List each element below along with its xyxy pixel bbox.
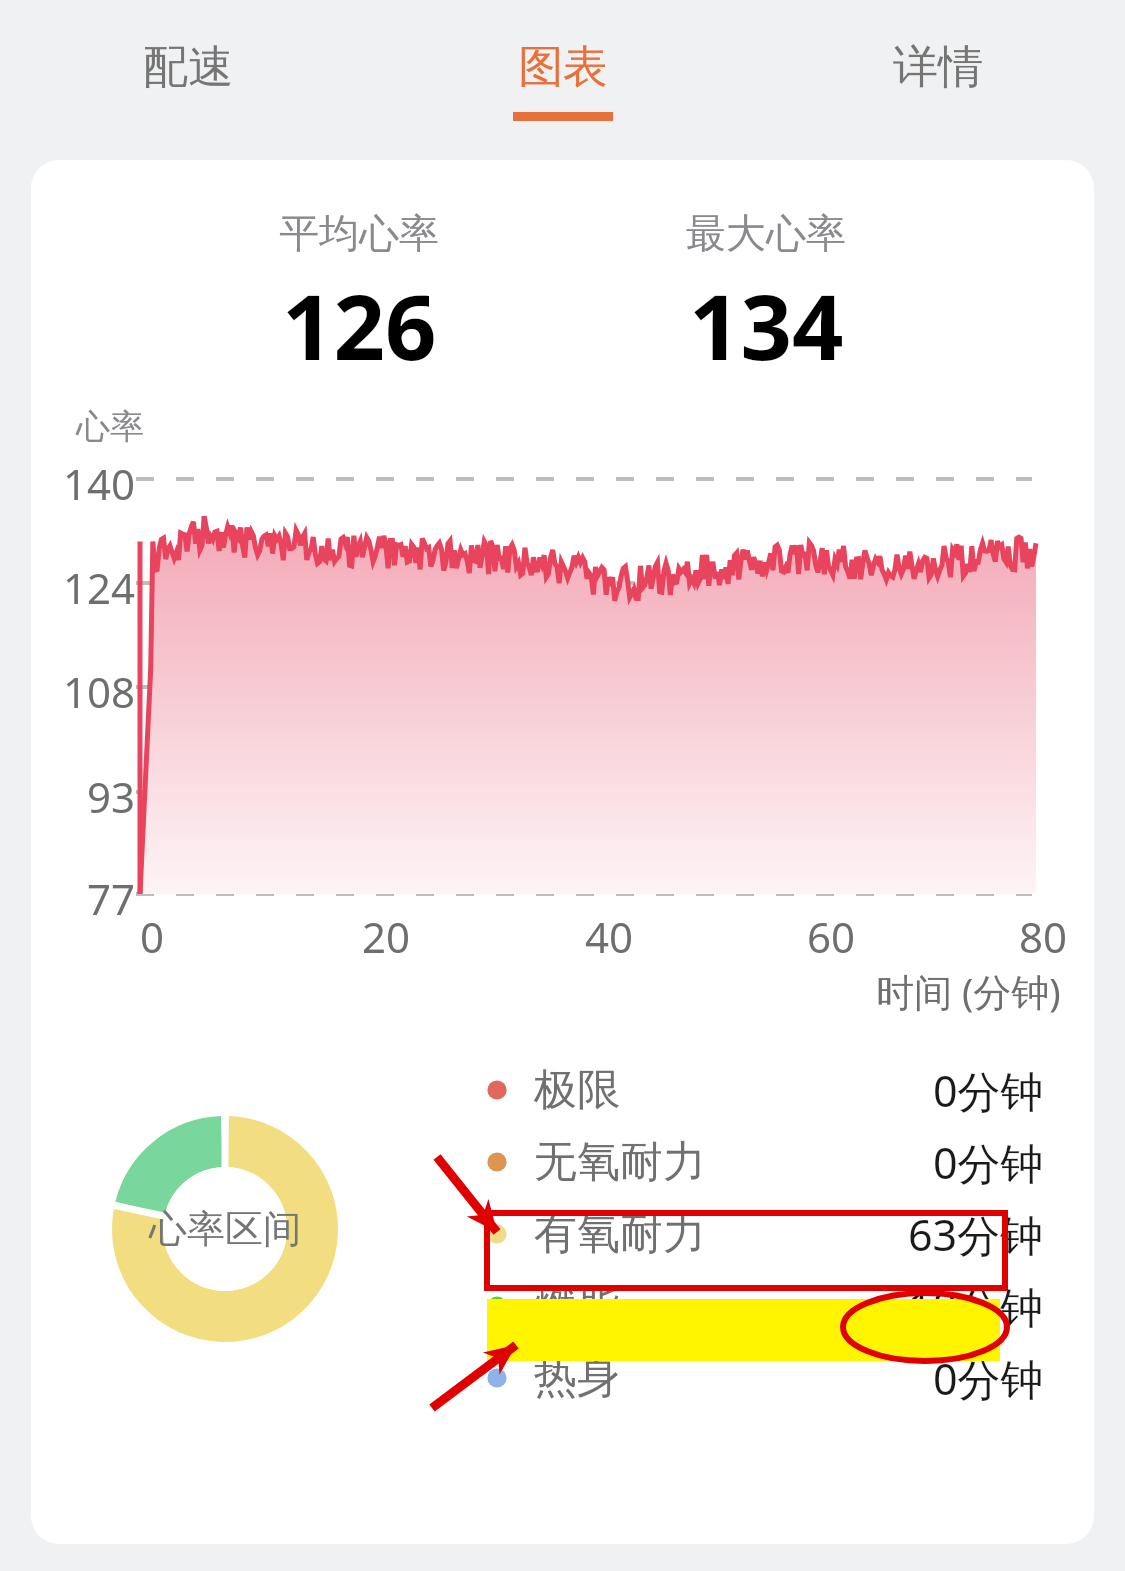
staticText: 124 <box>63 559 136 616</box>
staticText: 40 <box>585 908 634 965</box>
staticText: 108 <box>63 663 136 720</box>
staticText: 时间 (分钟) <box>876 965 1061 1017</box>
staticText: 63分钟 <box>908 1205 1044 1264</box>
staticText: 无氧耐力 <box>534 1135 706 1189</box>
staticText: 77 <box>87 870 136 927</box>
staticText: 18分钟 <box>908 1277 1044 1336</box>
staticText: 140 <box>63 455 136 512</box>
button[interactable]: 详情 <box>750 0 1125 160</box>
button[interactable]: 图表 <box>375 0 750 160</box>
staticText: 详情 <box>893 39 983 96</box>
staticText: 134 <box>689 264 844 387</box>
staticText: 心率区间 <box>149 1205 301 1253</box>
button[interactable]: 热身 <box>484 1342 1044 1414</box>
staticText: 燃脂 <box>534 1279 620 1333</box>
button[interactable]: 燃脂 <box>484 1270 1044 1342</box>
staticText: 有氧耐力 <box>534 1207 706 1261</box>
staticText: 0分钟 <box>933 1061 1044 1120</box>
button[interactable]: 有氧耐力 <box>484 1198 1044 1270</box>
staticText: 图表 <box>518 39 608 96</box>
staticText: 热身 <box>534 1351 620 1405</box>
staticText: 最大心率 <box>686 208 846 258</box>
staticText: 心率 <box>76 405 144 448</box>
button[interactable]: 无氧耐力 <box>484 1126 1044 1198</box>
staticText: 126 <box>282 264 437 387</box>
staticText: 60 <box>807 908 856 965</box>
staticText: 20 <box>362 908 411 965</box>
staticText: 0分钟 <box>933 1349 1044 1408</box>
button[interactable]: 极限 <box>484 1054 1044 1126</box>
staticText: 80 <box>1019 908 1068 965</box>
staticText: 0 <box>140 908 165 965</box>
staticText: 93 <box>87 768 136 825</box>
staticText: 配速 <box>143 39 233 96</box>
staticText: 0分钟 <box>933 1133 1044 1192</box>
staticText: 极限 <box>534 1063 620 1117</box>
button[interactable]: 配速 <box>0 0 375 160</box>
staticText: 平均心率 <box>279 208 439 258</box>
